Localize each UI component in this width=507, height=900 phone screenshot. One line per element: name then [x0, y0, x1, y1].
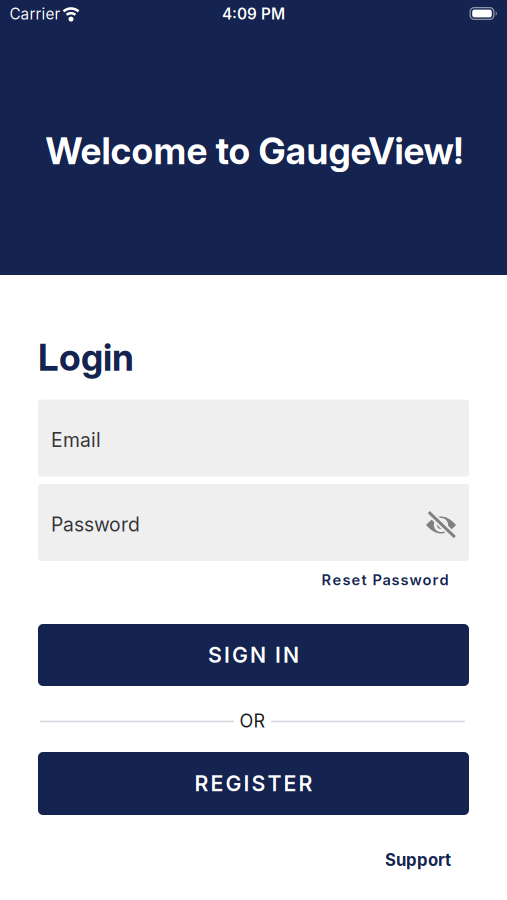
staticText: Password [51, 513, 140, 536]
staticText: Email [51, 428, 101, 452]
staticText: 4:09 PM [222, 5, 285, 23]
staticText: Login [38, 335, 134, 380]
staticText: Welcome to GaugeView! [45, 129, 463, 173]
staticText: S I G N I N [208, 642, 299, 668]
staticText: OR [239, 710, 265, 732]
button[interactable]: R e s e t P a s s w o r d [321, 571, 448, 589]
button[interactable]: Support [385, 850, 451, 870]
staticText: R E G I S T E R [194, 771, 312, 796]
staticText: R e s e t P a s s w o r d [321, 571, 448, 589]
staticText: Carrier [9, 5, 60, 23]
button[interactable]: Email [38, 399, 469, 476]
button[interactable]: R E G I S T E R [38, 752, 469, 815]
button[interactable]: S I G N I N [38, 624, 469, 686]
button[interactable]: Password [38, 484, 469, 561]
staticText: Support [385, 850, 451, 870]
